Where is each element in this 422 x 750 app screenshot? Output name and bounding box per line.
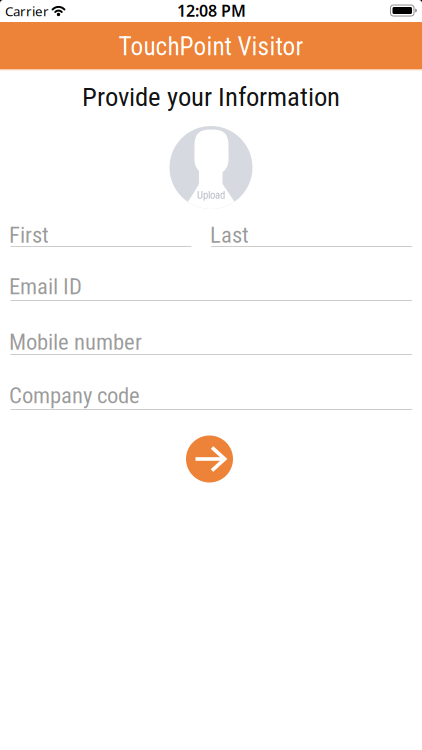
staticText: Email ID: [9, 273, 82, 300]
staticText: 12:08 PM: [177, 0, 246, 21]
button[interactable]: Next: [186, 435, 233, 482]
button[interactable]: Email ID: [10, 275, 412, 303]
staticText: TouchPoint Visitor: [118, 32, 303, 61]
button[interactable]: Company code: [10, 384, 412, 412]
button[interactable]: First: [10, 221, 191, 249]
staticText: Carrier: [5, 2, 49, 20]
button[interactable]: Last: [211, 221, 412, 249]
staticText: Company code: [9, 382, 140, 409]
staticText: Upload: [197, 189, 225, 201]
staticText: Mobile number: [9, 329, 142, 355]
button[interactable]: Upload photo: [169, 126, 252, 209]
staticText: First: [9, 222, 49, 248]
button[interactable]: Mobile number: [10, 329, 412, 357]
staticText: Last: [210, 222, 249, 248]
staticText: Provide your Information: [82, 81, 340, 113]
